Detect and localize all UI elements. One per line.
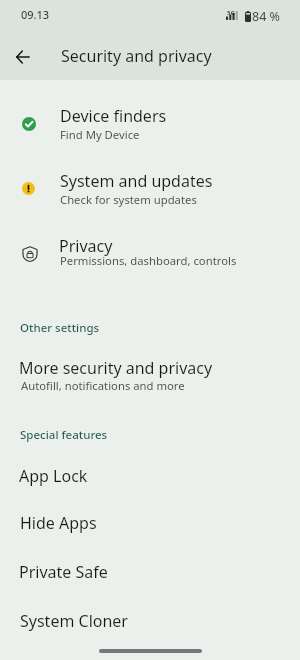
button[interactable]: Back xyxy=(7,41,39,73)
button[interactable]: Hide Apps xyxy=(0,500,300,548)
button[interactable]: Private Safe xyxy=(0,549,300,597)
staticText: Security and privacy xyxy=(61,45,212,67)
staticText: App Lock xyxy=(19,465,88,487)
button[interactable]: Device finders xyxy=(0,91,300,154)
button[interactable]: System Cloner xyxy=(0,598,300,646)
button[interactable]: Privacy xyxy=(0,221,300,284)
staticText: Find My Device xyxy=(60,127,140,142)
staticText: Other settings xyxy=(20,320,100,336)
staticText: More security and privacy xyxy=(19,357,213,379)
staticText: System and updates xyxy=(60,170,213,192)
staticText: Check for system updates xyxy=(60,192,197,207)
staticText: Privacy xyxy=(59,235,113,257)
staticText: System Cloner xyxy=(20,610,128,632)
staticText: 84 % xyxy=(252,8,280,25)
staticText: Autofill, notifications and more xyxy=(21,378,185,393)
staticText: Device finders xyxy=(60,105,167,127)
staticText: 5G xyxy=(227,9,235,17)
button[interactable]: App Lock xyxy=(0,452,300,500)
staticText: Special features xyxy=(20,427,108,443)
staticText: Hide Apps xyxy=(20,512,97,534)
button[interactable]: System and updates xyxy=(0,156,300,219)
button[interactable]: More security and privacy xyxy=(0,345,300,395)
staticText: Permissions, dashboard, controls xyxy=(60,253,237,268)
staticText: 09.13 xyxy=(21,7,50,22)
staticText: Private Safe xyxy=(19,561,108,583)
